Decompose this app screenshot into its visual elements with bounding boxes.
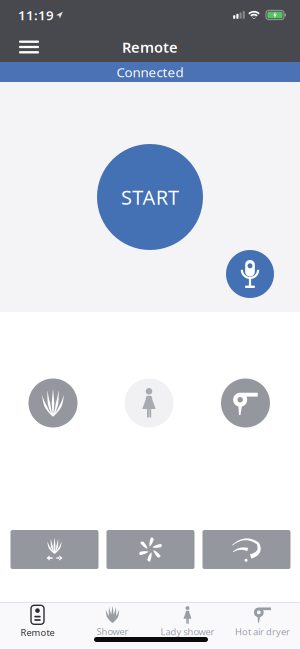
button[interactable]: Remote: [0, 602, 75, 642]
button[interactable]: Lady shower: [124, 378, 173, 427]
staticText: Hot air dryer: [235, 626, 290, 638]
staticText: Lady shower: [160, 626, 214, 638]
button[interactable]: Hot air dryer: [221, 378, 270, 427]
button[interactable]: Lady shower: [150, 602, 225, 642]
button[interactable]: Shower: [75, 602, 150, 642]
button[interactable]: Shower: [28, 378, 77, 427]
button[interactable]: Hot air dryer: [225, 602, 300, 642]
button[interactable]: Warm air: [202, 530, 290, 569]
staticText: Shower: [96, 625, 128, 638]
staticText: START: [121, 184, 179, 210]
staticText: Connected: [116, 63, 183, 81]
staticText: 11:19: [18, 6, 54, 24]
button[interactable]: Connected: [0, 62, 300, 82]
button[interactable]: START: [97, 144, 203, 250]
button[interactable]: Voice control: [226, 250, 274, 298]
staticText: Remote: [122, 37, 178, 57]
button[interactable]: Wide spray: [10, 530, 98, 569]
button[interactable]: Menu: [11, 32, 47, 62]
staticText: Remote: [20, 626, 54, 639]
button[interactable]: Massage spray: [106, 530, 194, 569]
